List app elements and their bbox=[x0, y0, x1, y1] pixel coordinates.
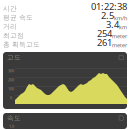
button[interactable]: Expand 고도 chart bbox=[117, 54, 125, 61]
staticText: 261 bbox=[97, 36, 112, 49]
staticText: meter bbox=[112, 42, 127, 49]
staticText: 평균 속도 bbox=[3, 13, 33, 22]
staticText: 속도 bbox=[7, 114, 21, 122]
staticText: 254 bbox=[97, 27, 112, 40]
staticText: 300 bbox=[8, 68, 14, 73]
staticText: 거리 bbox=[3, 22, 17, 31]
staticText: 최고점 bbox=[3, 31, 24, 40]
staticText: 시간 bbox=[3, 4, 17, 13]
staticText: meter bbox=[112, 33, 127, 40]
staticText: 3.4 bbox=[106, 18, 119, 31]
staticText: 01:22:38 bbox=[91, 0, 127, 13]
staticText: 0 bbox=[10, 95, 12, 100]
staticText: km/h bbox=[114, 15, 127, 22]
staticText: 100 bbox=[8, 86, 14, 91]
staticText: 총 획득고도 bbox=[3, 40, 40, 49]
staticText: 고도 bbox=[7, 53, 21, 62]
staticText: 1.0 bbox=[9, 123, 14, 129]
staticText: km bbox=[119, 24, 127, 31]
staticText: 2.5 bbox=[101, 9, 114, 22]
staticText: 200 bbox=[8, 77, 14, 82]
button[interactable]: Expand 속도 chart bbox=[117, 114, 125, 122]
